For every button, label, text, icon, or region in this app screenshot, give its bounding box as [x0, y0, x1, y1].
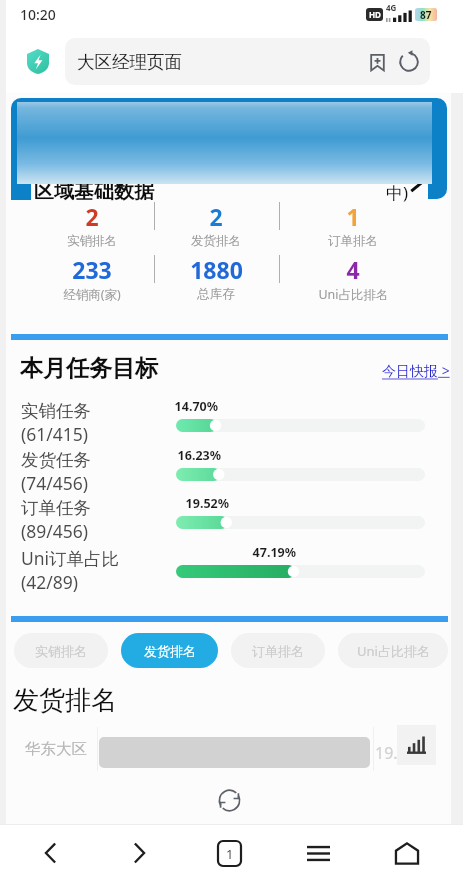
staticText: (61/415) [21, 422, 89, 446]
staticText: 发货排名 [144, 643, 196, 659]
staticText: 实销排名 [67, 233, 117, 249]
button[interactable]: 233 [32, 254, 152, 303]
button[interactable]: 发货排名 [121, 633, 218, 668]
button[interactable]: Chart [397, 725, 436, 765]
button[interactable]: Back [18, 825, 82, 881]
staticText: 2 [85, 201, 99, 232]
staticText: 87 [420, 8, 432, 21]
staticText: 4G [386, 2, 397, 13]
staticText: 大区经理页面 [77, 51, 182, 73]
staticText: 4 [346, 254, 360, 285]
staticText: Uni占比排名 [318, 286, 389, 303]
staticText: 中) [386, 181, 409, 204]
button[interactable]: Forward [108, 825, 172, 881]
button[interactable]: Home [375, 825, 439, 881]
staticText: 2 [209, 201, 223, 232]
staticText: 19.52% [185, 495, 229, 512]
button[interactable]: 2 [32, 201, 152, 249]
button[interactable]: 今日快报 > [382, 361, 450, 380]
staticText: (42/89) [21, 570, 79, 594]
staticText: 16.23% [177, 447, 221, 464]
staticText: 发货排名 [13, 684, 117, 717]
staticText: (89/456) [21, 519, 89, 543]
staticText: HD [369, 9, 381, 20]
staticText: 10:20 [20, 5, 56, 24]
button[interactable]: Tabs [197, 825, 261, 881]
staticText: 订单排名 [252, 643, 304, 659]
button[interactable]: Menu [286, 825, 350, 881]
button[interactable]: 1880 [156, 254, 276, 302]
button[interactable]: Add bookmark [360, 45, 394, 79]
staticText: 发货排名 [191, 233, 241, 249]
staticText: 实销排名 [35, 643, 87, 659]
staticText: 233 [72, 254, 112, 285]
button[interactable]: Load more [212, 783, 246, 817]
staticText: Uni订单占比 [21, 546, 120, 570]
staticText: 经销商(家) [63, 286, 121, 303]
staticText: 1880 [190, 254, 243, 285]
staticText: 总库存 [197, 286, 235, 302]
staticText: Uni占比排名 [357, 642, 430, 660]
staticText: 19.9% [375, 742, 421, 764]
button[interactable] [11, 98, 447, 199]
staticText: 今日快报 > [382, 361, 450, 380]
button[interactable]: 实销排名 [14, 633, 108, 668]
button[interactable]: 华东大区 [6, 725, 451, 779]
button[interactable]: 大区经理页面 [65, 38, 430, 85]
staticText: 47.19% [252, 544, 296, 561]
staticText: 订单排名 [328, 233, 378, 249]
staticText: 华东大区 [25, 739, 87, 759]
button[interactable]: Refresh page [392, 45, 426, 79]
staticText: 1 [226, 845, 234, 863]
button[interactable]: Uni占比排名 [338, 633, 448, 668]
staticText: 区域基础数据 [34, 179, 154, 204]
staticText: 实销任务 [21, 400, 91, 422]
staticText: 发货任务 [21, 449, 91, 471]
button[interactable]: 4 [293, 254, 413, 303]
staticText: 1 [346, 201, 360, 232]
staticText: (74/456) [21, 471, 89, 495]
staticText: 本月任务目标 [20, 354, 158, 383]
button[interactable]: 订单排名 [231, 633, 325, 668]
staticText: 订单任务 [21, 497, 91, 519]
button[interactable]: 2 [156, 201, 276, 249]
staticText: 14.70% [174, 398, 218, 415]
button[interactable]: Site security [27, 49, 49, 74]
button[interactable]: 1 [293, 201, 413, 249]
